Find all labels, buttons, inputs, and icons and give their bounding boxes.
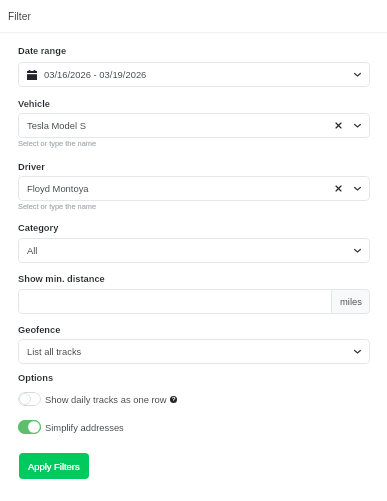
staticText: Driver	[18, 162, 45, 172]
button[interactable]: 03/16/2026 - 03/19/2026	[18, 62, 370, 87]
staticText: ?	[172, 396, 176, 403]
button[interactable]: All	[18, 238, 370, 263]
staticText: Vehicle	[18, 99, 51, 109]
staticText: List all tracks	[27, 346, 82, 357]
staticText: Category	[18, 223, 59, 233]
staticText: Simplify addresses	[45, 422, 124, 433]
button[interactable]: Apply Filters	[19, 453, 89, 479]
button[interactable]: Filter	[0, 0, 387, 32]
other: Clear	[336, 186, 341, 191]
button[interactable]: Tesla Model S	[18, 113, 370, 138]
staticText: Filter	[8, 11, 31, 23]
staticText: 03/16/2026 - 03/19/2026	[44, 69, 147, 80]
button[interactable]: Help	[170, 396, 177, 403]
staticText: Tesla Model S	[27, 120, 86, 131]
staticText: Options	[18, 373, 54, 383]
button[interactable]: List all tracks	[18, 339, 370, 364]
button[interactable]: Simplify addresses	[18, 420, 41, 434]
staticText: Geofence	[18, 325, 61, 335]
staticText: All	[27, 245, 38, 256]
button[interactable]: Show daily tracks as one row	[18, 392, 41, 406]
other: Clear	[336, 123, 341, 128]
staticText: Select or type the name	[18, 202, 97, 210]
button[interactable]	[18, 289, 331, 314]
staticText: Show daily tracks as one row	[45, 394, 167, 405]
staticText: miles	[340, 296, 362, 307]
staticText: Select or type the name	[18, 139, 97, 147]
staticText: Date range	[18, 46, 67, 56]
button[interactable]: Floyd Montoya	[18, 176, 370, 201]
staticText: Show min. distance	[18, 274, 105, 284]
staticText: Apply Filters	[28, 461, 80, 472]
staticText: Floyd Montoya	[27, 183, 89, 194]
